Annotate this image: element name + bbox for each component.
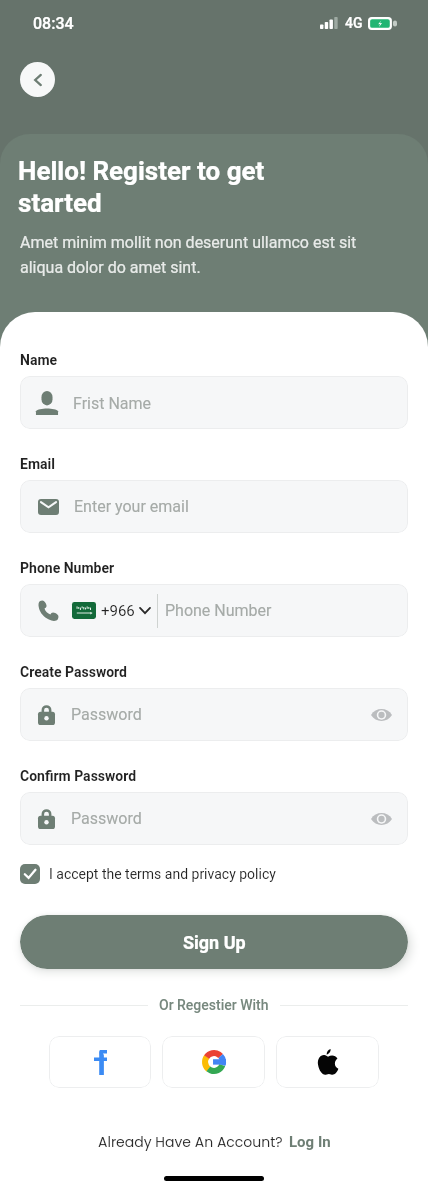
button[interactable]: Show password	[371, 708, 392, 722]
staticText: Enter your email	[74, 497, 189, 516]
button[interactable]: Sign up with Apple	[276, 1036, 379, 1088]
button[interactable]: Sign up with Facebook	[49, 1036, 151, 1088]
staticText: Phone Number	[20, 560, 115, 576]
button[interactable]: Back	[20, 62, 55, 97]
staticText: Log In	[289, 1133, 331, 1151]
button[interactable]: Enter your email	[20, 480, 408, 533]
staticText: 4G	[345, 15, 363, 31]
staticText: Phone Number	[165, 601, 272, 620]
button[interactable]: I accept the terms and privacy policy	[20, 864, 276, 884]
button[interactable]: Sign Up	[20, 915, 408, 969]
staticText: 08:34	[33, 14, 74, 33]
staticText: Or Regestier With	[159, 997, 269, 1013]
button[interactable]: Password	[20, 688, 408, 741]
button[interactable]: +966	[20, 584, 408, 637]
button[interactable]: Show password	[371, 812, 392, 826]
button[interactable]: Log In	[289, 1133, 331, 1151]
staticText: Amet minim mollit non deserunt ullamco e…	[20, 233, 357, 277]
staticText: Create Password	[20, 664, 127, 680]
staticText: +966	[101, 602, 135, 620]
button[interactable]: Password	[20, 792, 408, 845]
staticText: Name	[20, 352, 58, 368]
staticText: I accept the terms and privacy policy	[49, 866, 276, 882]
staticText: Hello! Register to get started	[18, 156, 265, 218]
staticText: Password	[71, 705, 142, 724]
staticText: Already Have An Account?	[98, 1132, 283, 1152]
staticText: Password	[71, 809, 142, 828]
staticText: Sign Up	[183, 932, 246, 953]
staticText: Confirm Password	[20, 768, 137, 784]
button[interactable]: Sign up with Google	[162, 1036, 265, 1088]
staticText: Frist Name	[73, 394, 152, 413]
staticText: Email	[20, 456, 55, 472]
button[interactable]: Frist Name	[20, 376, 408, 429]
